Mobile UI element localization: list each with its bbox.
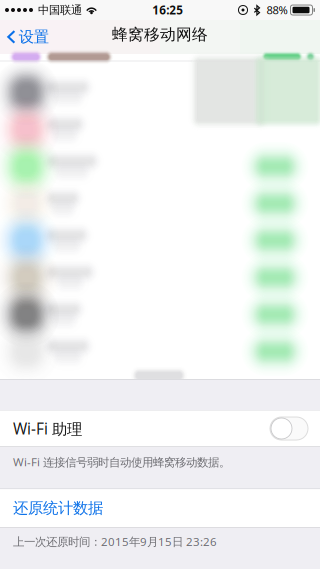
staticText: Wi-Fi 连接信号弱时自动使用蜂窝移动数据。 — [13, 454, 230, 470]
button[interactable]: Wi-Fi 助理 — [0, 410, 320, 446]
staticText: 88% — [266, 2, 287, 18]
staticText: Wi-Fi 助理 — [13, 418, 82, 439]
button[interactable]: 设置 — [0, 23, 59, 51]
staticText: 蜂窝移动网络 — [112, 25, 208, 44]
button[interactable]: 还原统计数据 — [0, 489, 320, 527]
staticText: 设置 — [19, 27, 49, 47]
staticText: 上一次还原时间：2015年9月15日 23:26 — [13, 534, 217, 549]
staticText: 16:25 — [152, 2, 183, 18]
staticText: 中国联通 — [38, 3, 82, 17]
staticText: 还原统计数据 — [13, 498, 103, 518]
